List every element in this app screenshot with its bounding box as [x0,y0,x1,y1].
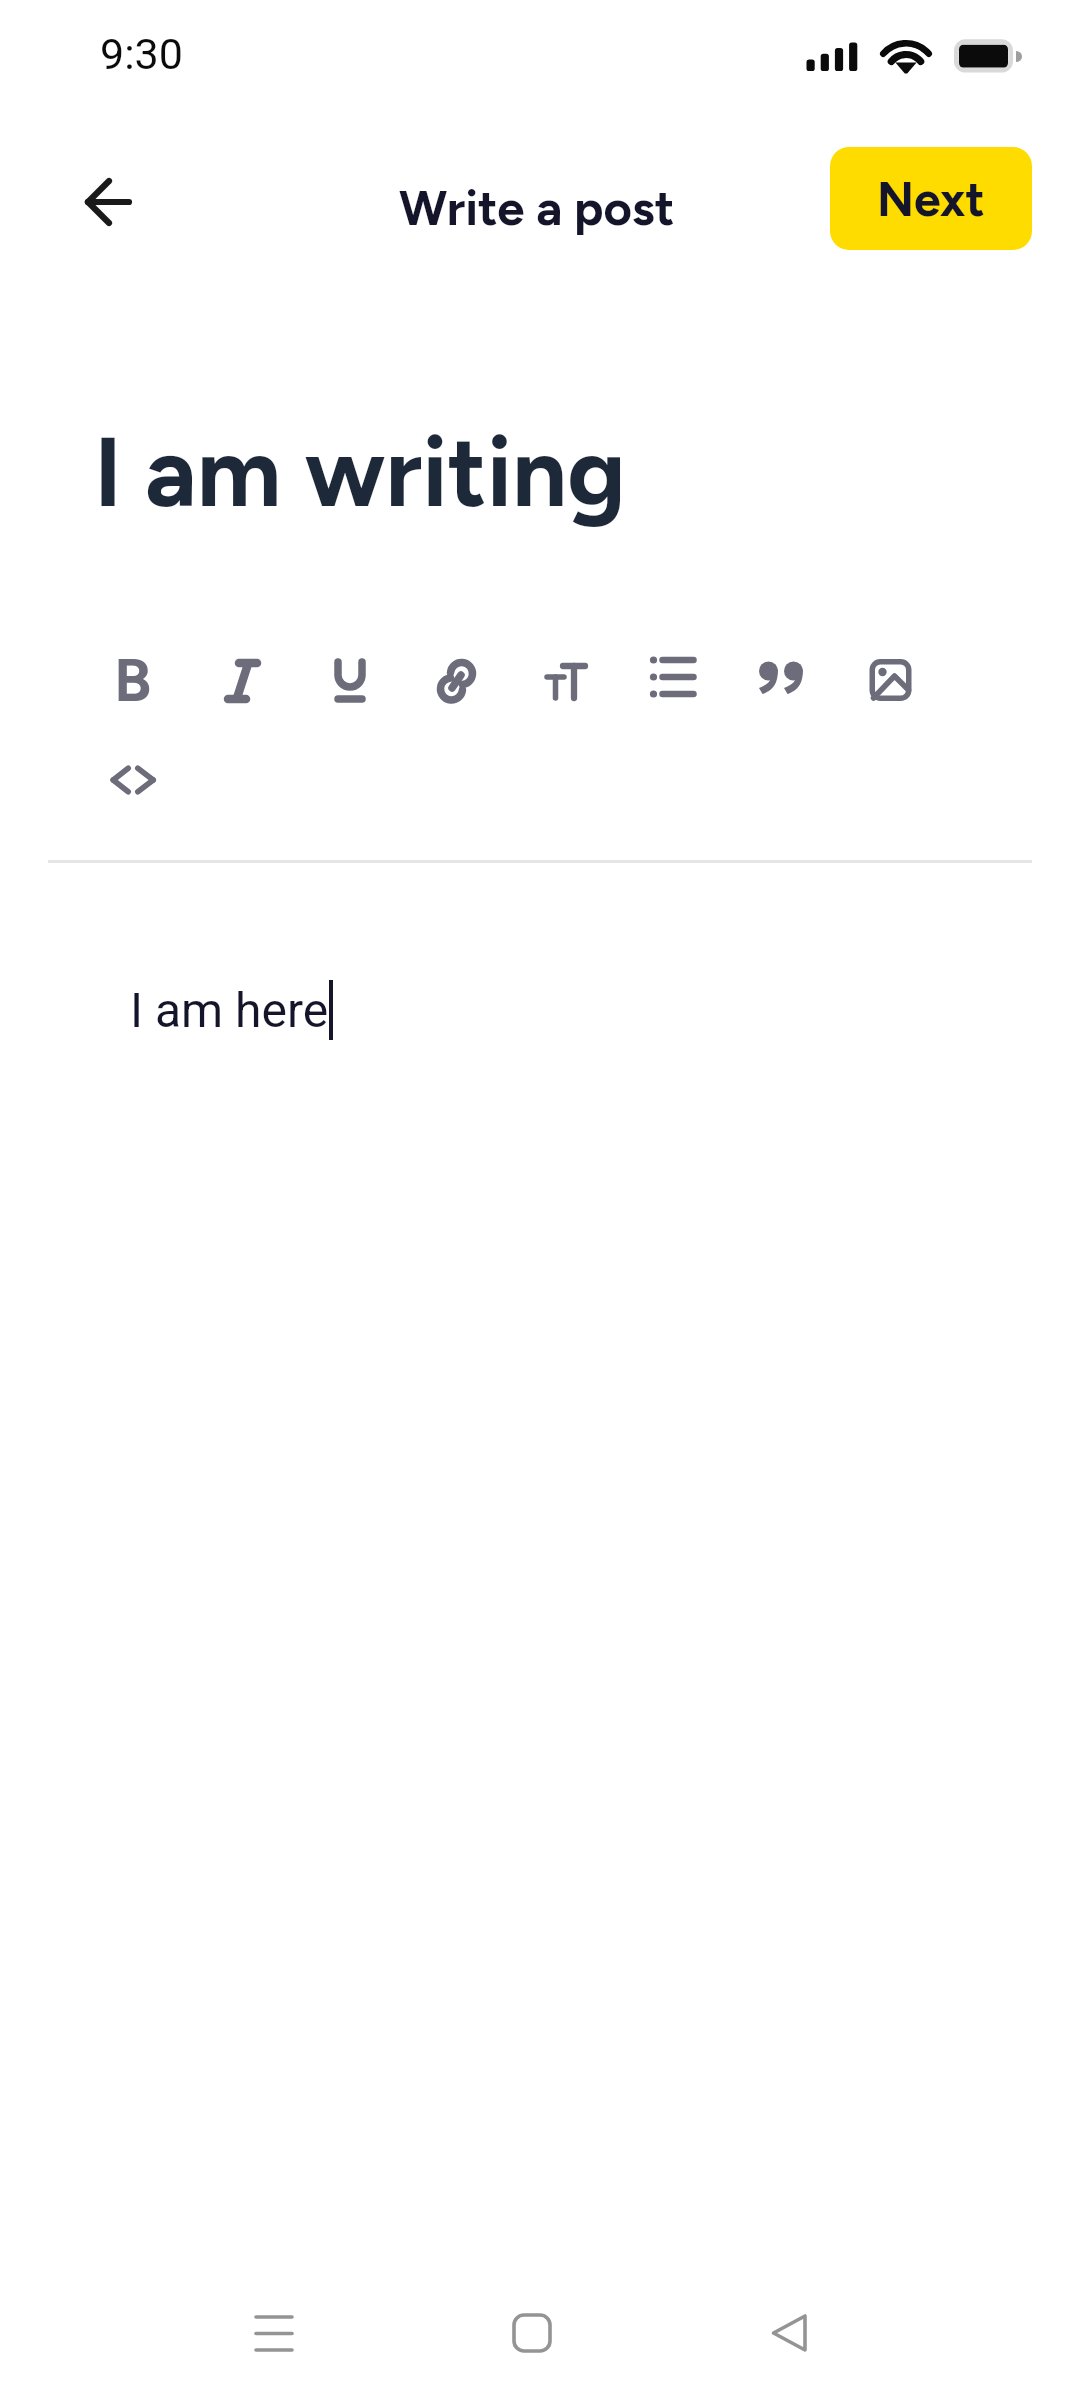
button[interactable]: Bold [79,626,187,734]
button[interactable]: Underline [295,626,403,734]
button[interactable]: Insert link [403,626,511,734]
button[interactable]: Bulleted list [619,626,727,734]
button[interactable]: Code block [79,726,187,834]
button[interactable]: Italic [187,626,295,734]
button[interactable]: Back [51,142,171,262]
button[interactable]: Insert image [835,626,943,734]
button[interactable]: Home [494,2295,570,2371]
button[interactable]: Recent apps [236,2295,312,2371]
button[interactable]: Back [752,2295,828,2371]
button[interactable]: Next [830,147,1032,250]
staticText: B [114,643,152,716]
button[interactable]: I am here [0,900,1080,2200]
staticText: 9:30 [100,29,183,79]
button[interactable]: Quote [727,626,835,734]
button[interactable]: Text size [511,626,619,734]
staticText: I am writing [94,414,626,530]
staticText: Write a post [399,178,675,237]
staticText: I am here [130,982,329,1038]
staticText: Next [877,170,985,228]
